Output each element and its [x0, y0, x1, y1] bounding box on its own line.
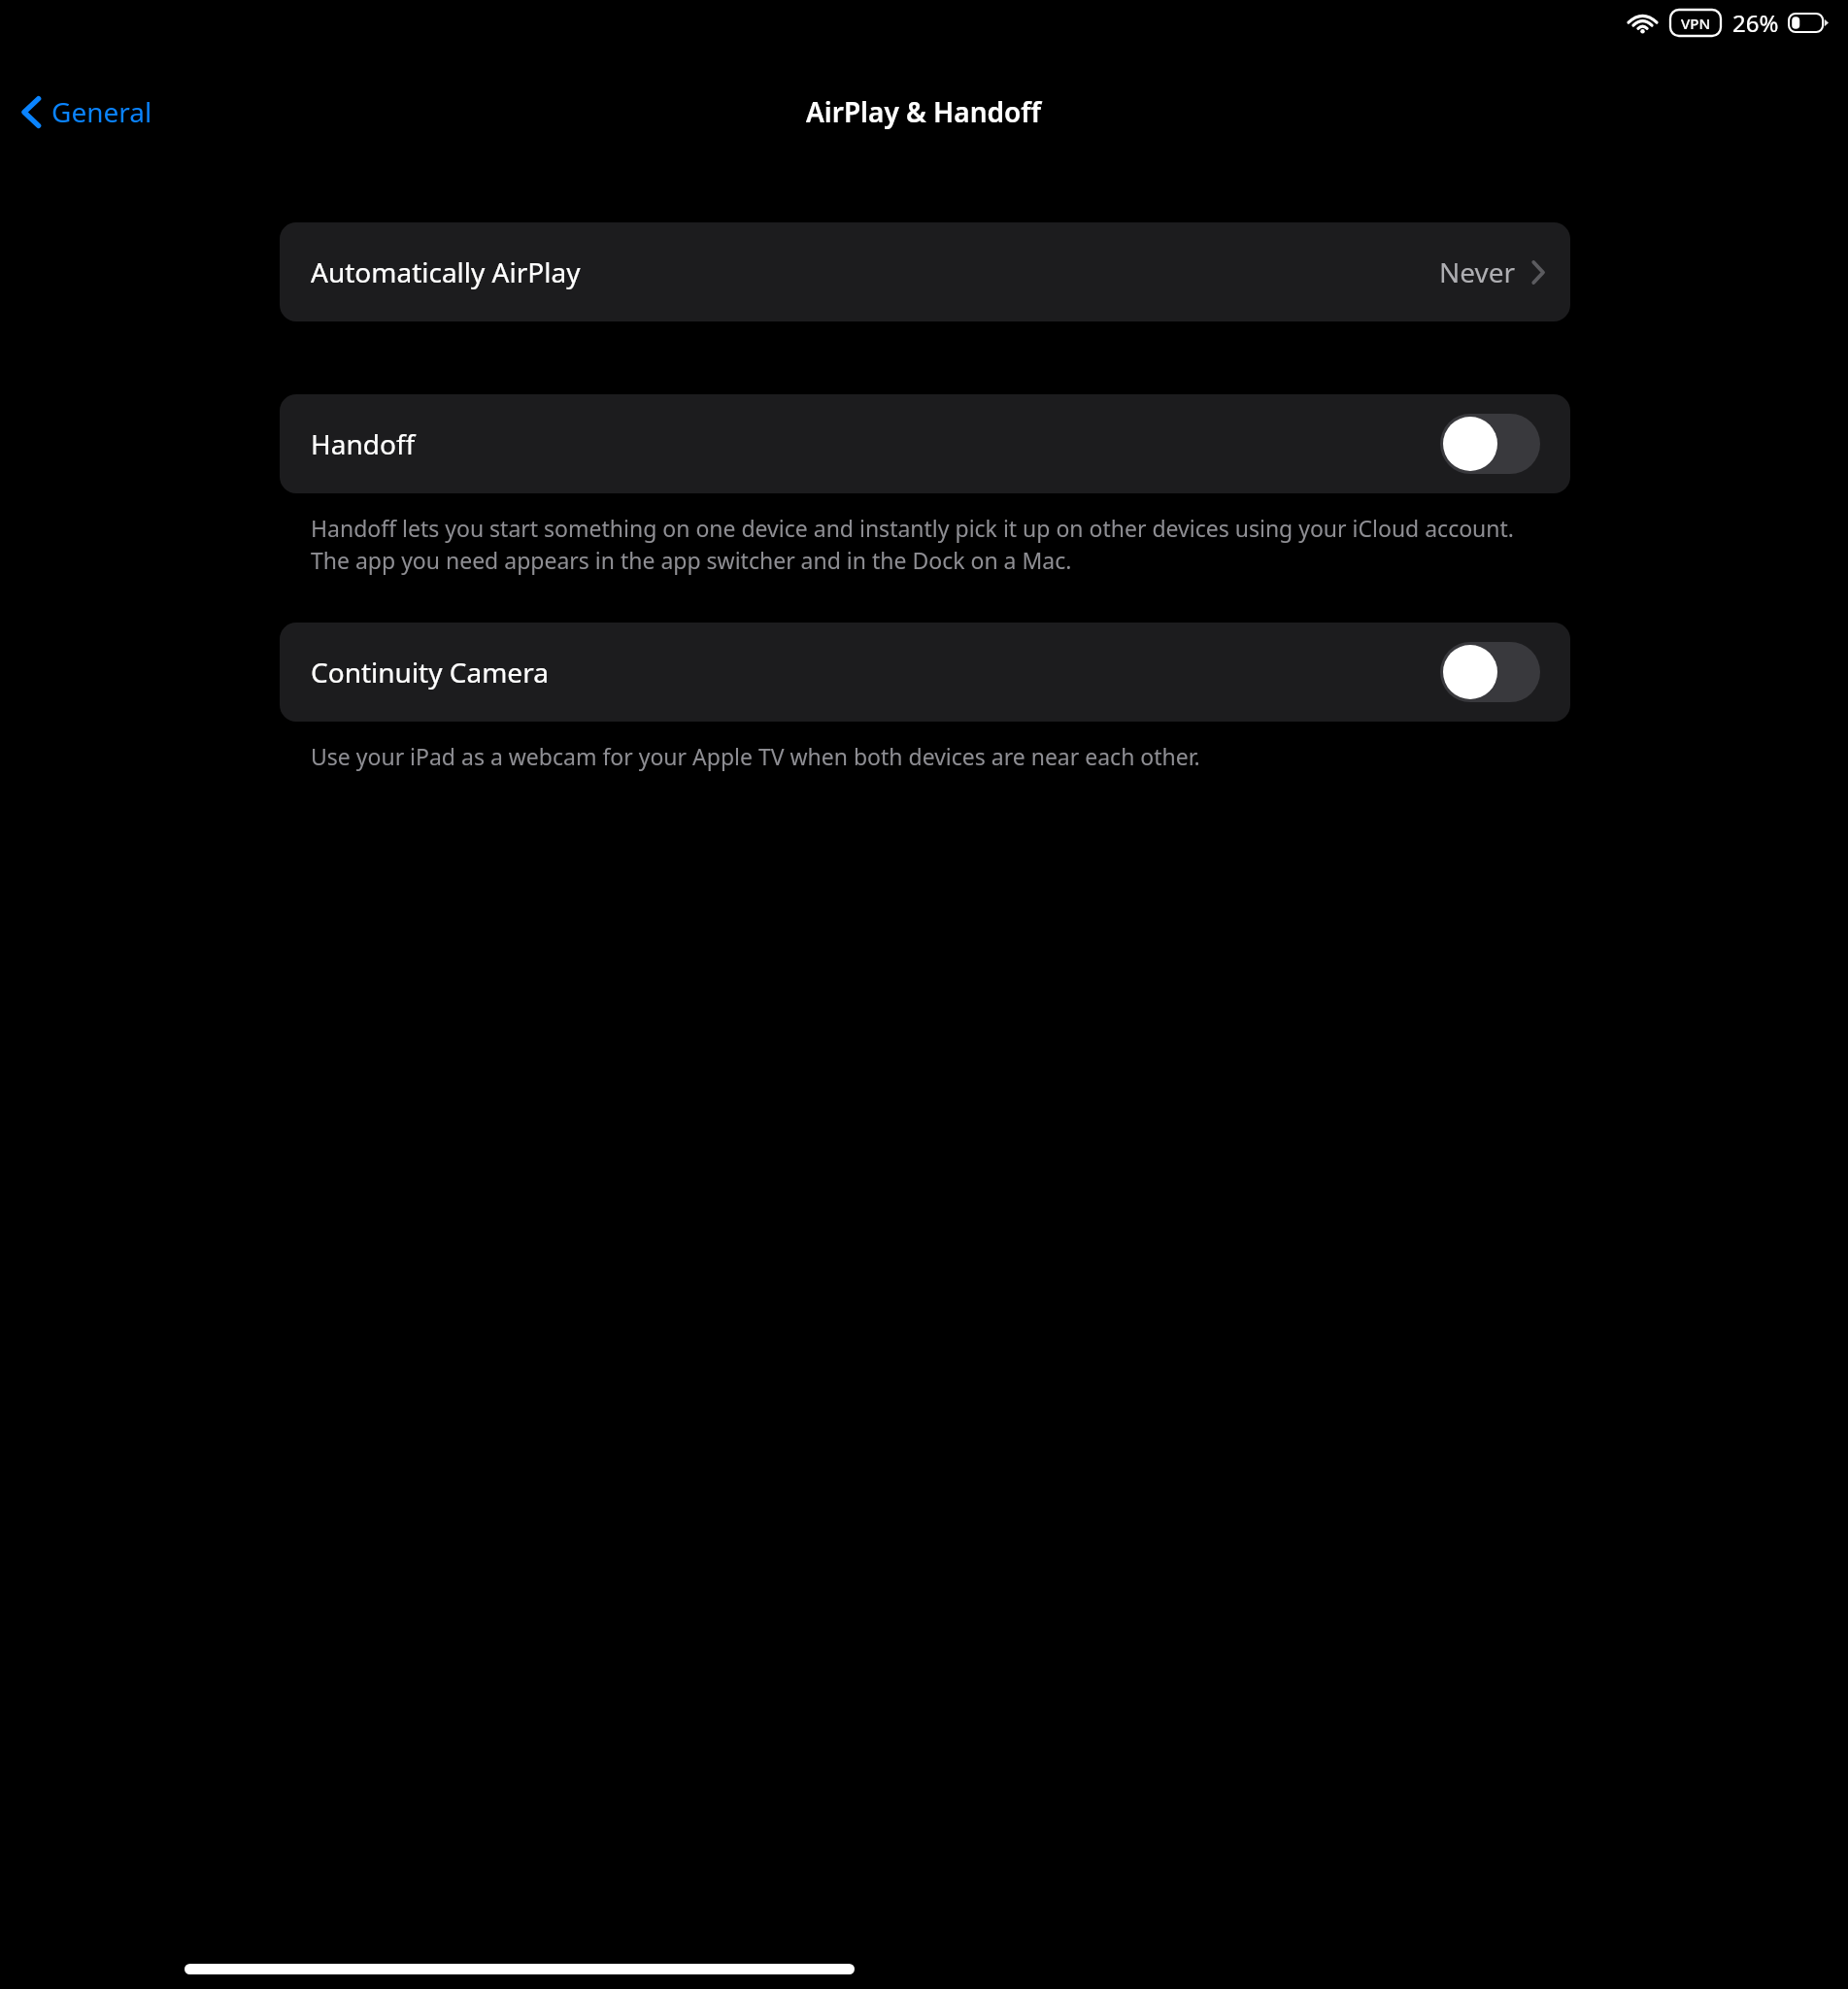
button[interactable]: Handoff off [1440, 414, 1540, 474]
staticText: Handoff [311, 425, 416, 462]
staticText: Never [1439, 253, 1516, 290]
staticText: General [51, 93, 152, 130]
button[interactable]: Handoff [280, 394, 1570, 493]
button[interactable]: General [14, 84, 160, 140]
staticText: Handoff lets you start something on one … [311, 513, 1557, 576]
staticText: 26% [1732, 7, 1779, 39]
staticText: VPN [1681, 14, 1711, 33]
other: Battery 26 percent [1788, 13, 1829, 33]
staticText: Automatically AirPlay [311, 253, 581, 290]
button[interactable]: Continuity Camera off [1440, 642, 1540, 702]
staticText: Continuity Camera [311, 654, 549, 691]
staticText: Use your iPad as a webcam for your Apple… [311, 741, 1200, 771]
button[interactable]: Continuity Camera [280, 623, 1570, 722]
staticText: AirPlay & Handoff [806, 93, 1042, 130]
other: Wi-Fi [1628, 12, 1658, 35]
button[interactable]: Automatically AirPlay [280, 222, 1570, 321]
other: VPN [1670, 10, 1721, 36]
